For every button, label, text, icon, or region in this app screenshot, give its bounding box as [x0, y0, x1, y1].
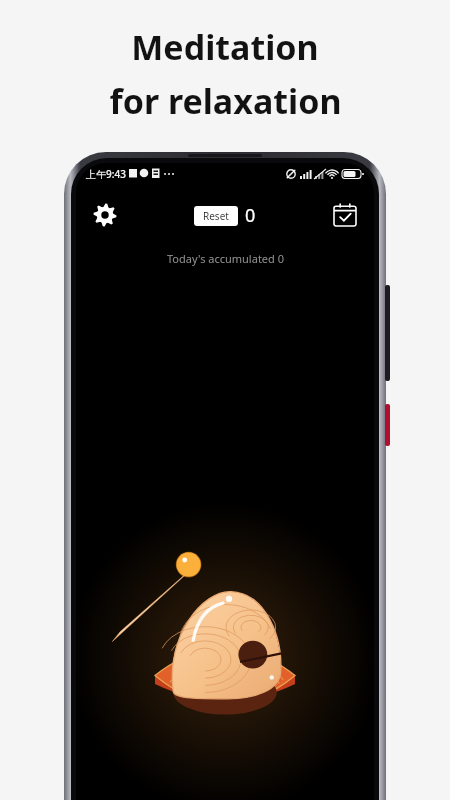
button[interactable]: Reset [194, 206, 238, 226]
staticText: Reset [203, 209, 229, 223]
staticText: 上午9:43 [86, 167, 126, 181]
button[interactable]: Settings [88, 198, 122, 232]
staticText: Today's accumulated 0 [167, 251, 284, 266]
staticText: for relaxation [109, 78, 342, 124]
staticText: Meditation [131, 24, 319, 70]
staticText: 0 [245, 203, 256, 228]
button[interactable]: Calendar [328, 198, 362, 232]
